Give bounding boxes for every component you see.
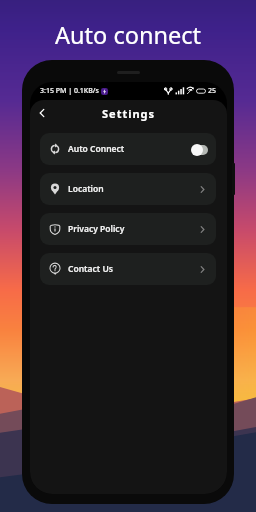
- staticText: Settings: [102, 106, 156, 121]
- staticText: Contact Us: [68, 263, 113, 275]
- staticText: Auto connect: [0, 19, 256, 51]
- staticText: 3:15 PM | 0.1KB/s: [40, 86, 99, 96]
- staticText: Location: [68, 183, 104, 195]
- button[interactable]: Auto Connect: [40, 133, 216, 165]
- staticText: Privacy Policy: [68, 223, 125, 235]
- button[interactable]: Location: [40, 173, 216, 205]
- button[interactable]: Contact Us: [40, 253, 216, 285]
- button[interactable]: Privacy Policy: [40, 213, 216, 245]
- button[interactable]: Back: [33, 104, 51, 122]
- staticText: 25: [208, 86, 217, 96]
- staticText: Auto Connect: [68, 143, 125, 155]
